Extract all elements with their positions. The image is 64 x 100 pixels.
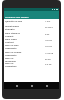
staticText: Mass of Admixture	[5, 62, 24, 67]
button[interactable]: Quantity of Mix	[4, 19, 59, 24]
staticText: Target Blend Strength	[5, 25, 24, 31]
staticText: Mass of Fine Aggregate	[5, 44, 24, 50]
button[interactable]: Mass of Admixture	[4, 62, 59, 67]
staticText: 2.8 kg	[45, 63, 58, 66]
staticText: Quantity of Mix	[5, 20, 24, 23]
button[interactable]: Recent apps	[44, 83, 49, 88]
staticText: 0.50	[45, 33, 58, 36]
staticText: Final Stage of Cement	[5, 32, 24, 38]
button[interactable]: Mass of Fine Aggregate	[4, 43, 59, 50]
staticText: 25 MPa	[45, 26, 58, 29]
staticText: 1100 kg	[45, 52, 58, 55]
button[interactable]: Concrete Mix Design	[4, 11, 59, 19]
staticText: 190 kg	[45, 39, 58, 42]
staticText: Final Slope Content	[5, 38, 24, 43]
staticText: 720 kg	[45, 45, 58, 48]
button[interactable]: Mass of Coarse Aggregate	[4, 50, 59, 57]
staticText: 1 m3	[45, 20, 58, 23]
button[interactable]: Target Blend Strength	[4, 24, 59, 31]
staticText: Mass of Coarse Aggregate	[5, 51, 24, 57]
button[interactable]: Mass of Individual	[4, 57, 59, 62]
staticText: Concrete Mix Design	[5, 15, 29, 18]
button[interactable]: Final Slope Content	[4, 38, 59, 43]
button[interactable]: Home	[29, 83, 34, 88]
staticText: 58 kg	[45, 58, 58, 61]
button[interactable]: Back	[14, 83, 19, 88]
staticText: Mass of Individual	[5, 57, 24, 62]
button[interactable]: Final Stage of Cement	[4, 31, 59, 38]
